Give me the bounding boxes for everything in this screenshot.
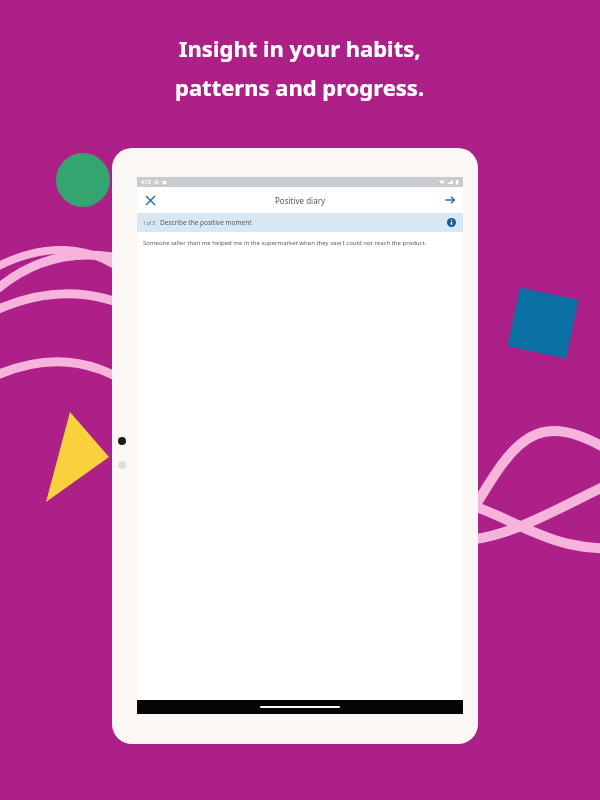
button[interactable]: 1 of 3 bbox=[137, 213, 463, 232]
button[interactable]: Information bbox=[446, 217, 457, 228]
staticText: Positive diary bbox=[275, 195, 326, 206]
button[interactable]: Close bbox=[137, 187, 163, 213]
staticText: Describe the positive moment bbox=[160, 218, 252, 227]
staticText: Insight in your habits, bbox=[179, 33, 421, 63]
button[interactable]: Next bbox=[437, 187, 463, 213]
staticText: 1 of 3 bbox=[143, 220, 155, 226]
staticText: patterns and progress. bbox=[175, 72, 425, 102]
staticText: Someone taller than me helped me in the … bbox=[143, 239, 427, 247]
staticText: 4:12 bbox=[141, 179, 151, 186]
